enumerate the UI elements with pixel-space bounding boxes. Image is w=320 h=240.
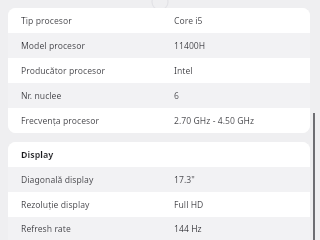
staticText: Producător procesor <box>21 65 106 77</box>
staticText: Model procesor <box>21 40 85 52</box>
staticText: Intel <box>174 65 193 77</box>
button[interactable]: Diagonală display <box>8 167 310 192</box>
staticText: 17.3" <box>174 174 195 186</box>
button[interactable]: Nr. nuclee <box>8 83 310 108</box>
button[interactable]: Refresh rate <box>8 217 310 240</box>
staticText: Core i5 <box>174 15 203 27</box>
staticText: 6 <box>174 90 179 102</box>
staticText: 11400H <box>174 40 206 52</box>
staticText: Diagonală display <box>21 174 94 186</box>
button[interactable]: Tip procesor <box>8 8 310 33</box>
staticText: Frecvența procesor <box>21 115 100 127</box>
staticText: Nr. nuclee <box>21 90 62 102</box>
button[interactable]: Model procesor <box>8 33 310 58</box>
button[interactable]: Frecvența procesor <box>8 108 310 133</box>
staticText: Rezoluție display <box>21 199 90 211</box>
staticText: Tip procesor <box>21 15 72 27</box>
staticText: Display <box>21 149 54 161</box>
staticText: Refresh rate <box>21 223 71 235</box>
staticText: 144 Hz <box>174 223 202 235</box>
staticText: 2.70 GHz - 4.50 GHz <box>174 115 255 127</box>
staticText: Full HD <box>174 199 204 211</box>
button[interactable]: Producător procesor <box>8 58 310 83</box>
button[interactable]: Rezoluție display <box>8 192 310 217</box>
